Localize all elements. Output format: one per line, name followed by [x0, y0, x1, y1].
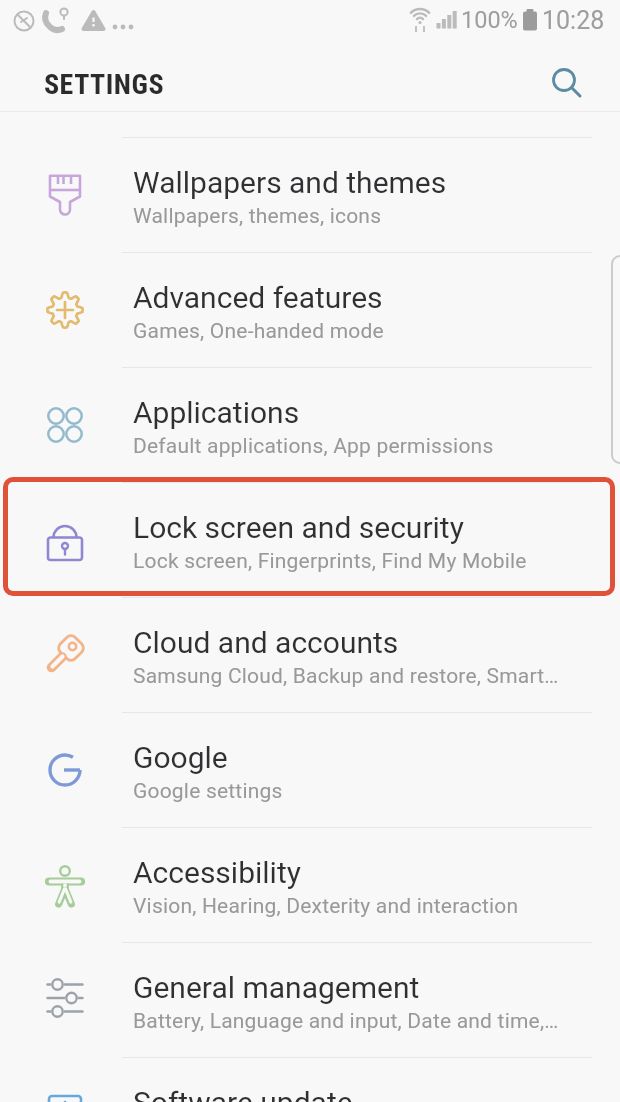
button[interactable]: Applications [0, 368, 620, 482]
staticText: Battery, Language and input, Date and ti… [133, 1009, 559, 1034]
staticText: Applications [133, 395, 300, 430]
staticText: SETTINGS [44, 68, 165, 101]
button[interactable]: General management [0, 943, 620, 1057]
staticText: Games, One-handed mode [133, 319, 384, 344]
staticText: Lock screen and security [133, 510, 464, 545]
button[interactable]: Software update [0, 1058, 620, 1102]
button[interactable]: Advanced features [0, 253, 620, 367]
button[interactable]: Wallpapers and themes [0, 138, 620, 252]
staticText: Lock screen, Fingerprints, Find My Mobil… [133, 549, 527, 574]
button[interactable]: Lock screen and security [0, 483, 620, 597]
button[interactable]: Cloud and accounts [0, 598, 620, 712]
staticText: Default applications, App permissions [133, 434, 494, 459]
staticText: 10:28 [542, 6, 605, 35]
staticText: 100% [461, 6, 518, 34]
button[interactable]: Accessibility [0, 828, 620, 942]
button[interactable] [544, 60, 590, 106]
staticText: General management [133, 970, 420, 1005]
staticText: Software update [133, 1085, 353, 1102]
staticText: Google settings [133, 779, 283, 804]
staticText: Samsung Cloud, Backup and restore, Smart… [133, 664, 559, 689]
staticText: Wallpapers and themes [133, 165, 447, 200]
staticText: Wallpapers, themes, icons [133, 204, 382, 229]
staticText: Cloud and accounts [133, 625, 399, 660]
staticText: Advanced features [133, 280, 383, 315]
staticText: Vision, Hearing, Dexterity and interacti… [133, 894, 519, 919]
staticText: Google [133, 740, 228, 775]
staticText: Accessibility [133, 855, 301, 890]
button[interactable]: Google [0, 713, 620, 827]
